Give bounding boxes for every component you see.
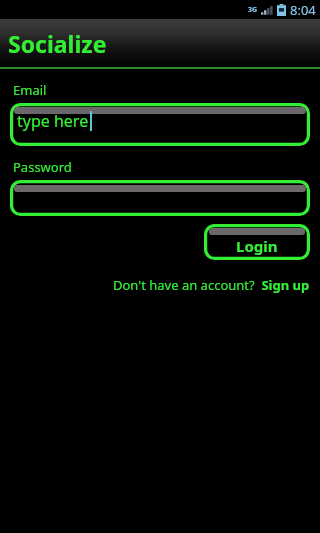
button[interactable]: type here — [10, 103, 310, 146]
staticText: type here — [17, 110, 89, 132]
button[interactable]: Login — [204, 224, 310, 260]
staticText: Password — [13, 158, 72, 176]
staticText: Don't have an account? Sign up — [113, 276, 310, 294]
staticText: 3G — [248, 5, 258, 15]
button[interactable]: Don't have an account? Sign up — [10, 276, 310, 294]
staticText: Socialize — [8, 28, 107, 59]
staticText: Email — [13, 81, 47, 99]
staticText: 8:04 — [290, 1, 316, 19]
button[interactable] — [10, 180, 310, 216]
staticText: Login — [236, 236, 278, 256]
